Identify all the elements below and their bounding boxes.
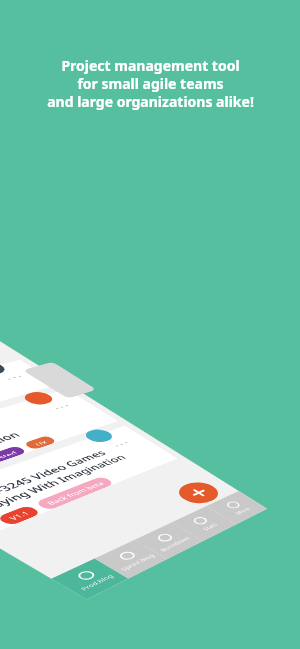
- staticText: Sprint blog: [118, 553, 156, 572]
- button[interactable]: Add task: [171, 478, 226, 508]
- staticText: Back from beta: [44, 480, 106, 506]
- staticText: #CSI-3245 Video Games: [0, 448, 110, 506]
- button[interactable]: #CSI-3245 Video Games: [0, 425, 178, 534]
- staticText: Burndown: [158, 535, 192, 553]
- button[interactable]: Video Games: [0, 389, 118, 491]
- staticText: Project management tool for small agile …: [47, 56, 254, 111]
- button[interactable]: Stats: [172, 506, 236, 541]
- staticText: V1.1: [6, 509, 32, 521]
- staticText: With Imagination: [0, 430, 24, 473]
- staticText: Changes requested: [0, 450, 18, 480]
- button[interactable]: Burndown: [135, 522, 203, 559]
- staticText: UX: [32, 439, 48, 446]
- staticText: More: [233, 506, 252, 516]
- button[interactable]: Sprint blog: [95, 540, 167, 578]
- staticText: Prod.blog: [78, 573, 115, 592]
- button[interactable]: More: [206, 491, 267, 524]
- button[interactable]: Prod.blog: [51, 558, 128, 599]
- staticText: Playing With Imagination: [0, 452, 129, 514]
- staticText: Stats: [201, 522, 219, 532]
- button[interactable]: Video Games: [0, 359, 59, 448]
